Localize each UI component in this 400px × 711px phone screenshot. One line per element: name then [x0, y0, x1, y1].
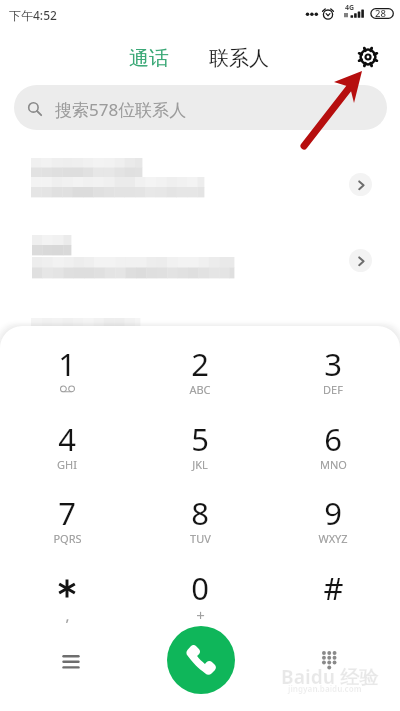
staticText: 9 [324, 492, 342, 534]
staticText: 搜索578位联系人 [55, 98, 187, 121]
staticText: + [196, 605, 205, 625]
button[interactable]: 3 [278, 331, 388, 404]
staticText: 5 [191, 418, 209, 460]
button[interactable]: 1 [12, 331, 122, 404]
button[interactable] [0, 304, 400, 344]
staticText: 4 [58, 418, 76, 460]
staticText: GHI [57, 457, 77, 472]
staticText: JKL [192, 457, 208, 472]
staticText: 6 [324, 418, 342, 460]
staticText: 7 [58, 492, 76, 534]
staticText: PQRS [53, 531, 82, 546]
button[interactable]: Settings [352, 41, 384, 73]
button[interactable]: 0 [145, 555, 255, 628]
staticText: 1 [58, 343, 76, 385]
button[interactable]: Hide keypad [305, 636, 351, 682]
staticText: # [323, 567, 344, 609]
button[interactable]: 6 [278, 406, 388, 479]
staticText: TUV [190, 531, 211, 546]
staticText: 8 [191, 492, 209, 534]
button[interactable]: Call log menu [48, 639, 94, 685]
staticText: 联系人 [209, 46, 269, 71]
staticText: 4G [345, 3, 355, 13]
button[interactable]: Open contact details [349, 249, 372, 272]
button[interactable]: Call [167, 626, 235, 694]
staticText: 2 [191, 343, 209, 385]
button[interactable]: 8 [145, 480, 255, 553]
button[interactable]: Open contact details [0, 148, 400, 222]
button[interactable]: 5 [145, 406, 255, 479]
staticText: 3 [324, 343, 342, 385]
staticText: DEF [323, 382, 343, 397]
button[interactable]: 通话 [123, 42, 175, 75]
staticText: 0 [191, 567, 209, 609]
staticText: MNO [320, 457, 347, 472]
button[interactable]: 搜索578位联系人 [14, 85, 387, 130]
button[interactable]: 2 [145, 331, 255, 404]
button[interactable]: 联系人 [203, 42, 275, 75]
staticText: jingyan.baidu.com [288, 683, 362, 694]
button[interactable]: 9 [278, 480, 388, 553]
staticText: 通话 [129, 46, 169, 71]
button[interactable]: Open contact details [0, 226, 400, 300]
staticText: WXYZ [318, 531, 348, 546]
button[interactable]: 7 [12, 480, 122, 553]
button[interactable]: 4 [12, 406, 122, 479]
staticText: , [65, 605, 70, 625]
staticText: Baidu 经验 [281, 664, 378, 690]
staticText: ABC [189, 382, 211, 397]
button[interactable]: # [278, 555, 388, 628]
staticText: 28 [375, 7, 386, 20]
button[interactable]: Open contact details [349, 173, 372, 196]
button[interactable]: , [12, 555, 122, 628]
staticText: 下午4:52 [9, 7, 57, 23]
